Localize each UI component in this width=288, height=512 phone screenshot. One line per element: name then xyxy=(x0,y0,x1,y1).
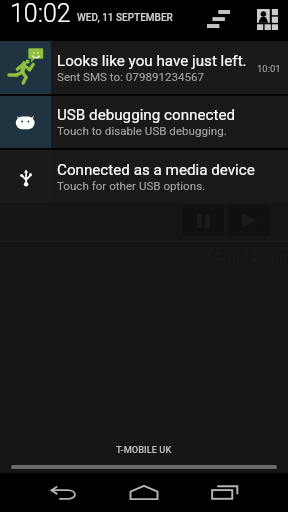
staticText: 10:01 xyxy=(257,63,281,74)
button[interactable]: Notification settings xyxy=(200,4,236,36)
button[interactable]: Pause xyxy=(182,205,224,236)
staticText: 10:02 xyxy=(10,0,71,28)
staticText: Connected as a media device xyxy=(57,161,255,179)
button[interactable]: Recent apps xyxy=(185,473,265,512)
button[interactable]: Home xyxy=(104,473,184,512)
staticText: Looks like you have just left. xyxy=(57,52,247,70)
staticText: WED, 11 SEPTEMBER xyxy=(77,12,173,24)
button[interactable]: Looks like you have just left. xyxy=(0,41,288,94)
button[interactable]: Quick settings xyxy=(251,3,288,37)
staticText: T-MOBILE UK xyxy=(116,444,172,455)
staticText: Sent SMS to: 079891234567 xyxy=(57,70,205,84)
staticText: Touch to disable USB debugging. xyxy=(57,124,227,138)
button[interactable]: Connected as a media device xyxy=(0,150,288,203)
button[interactable]: USB debugging connected xyxy=(0,96,288,148)
button[interactable]: Back xyxy=(24,473,104,512)
staticText: Touch for other USB options. xyxy=(57,179,206,193)
staticText: USB debugging connected xyxy=(57,106,236,124)
